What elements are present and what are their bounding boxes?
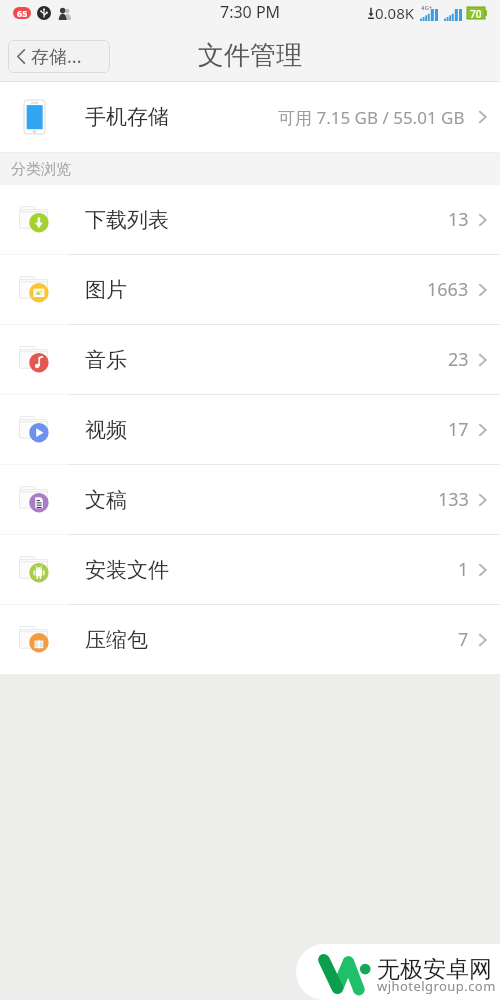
button[interactable]: 文稿 <box>0 465 500 534</box>
staticText: 视频 <box>85 417 127 443</box>
button[interactable]: 图片 <box>0 255 500 324</box>
staticText: 7:30 PM <box>220 1 281 23</box>
button[interactable]: 压缩包 <box>0 605 500 674</box>
staticText: 图片 <box>85 277 127 303</box>
staticText: 4G+ <box>421 4 433 12</box>
staticText: 文件管理 <box>198 39 302 72</box>
staticText: 0.08K <box>375 3 415 23</box>
staticText: 可用 7.15 GB / 55.01 GB <box>278 106 465 129</box>
staticText: wjhotelgroup.com <box>377 977 496 995</box>
staticText: 23 <box>448 347 469 372</box>
button[interactable]: 下载列表 <box>0 185 500 254</box>
staticText: 音乐 <box>85 347 127 373</box>
staticText: 手机存储 <box>85 104 169 130</box>
staticText: 7 <box>458 627 469 652</box>
staticText: 1663 <box>427 277 469 302</box>
staticText: 分类浏览 <box>11 160 71 179</box>
staticText: 13 <box>448 207 469 232</box>
staticText: 无极安卓网 <box>377 955 492 984</box>
staticText: 安装文件 <box>85 557 169 583</box>
staticText: 存储... <box>31 44 82 69</box>
button[interactable]: 手机存储 <box>0 82 500 152</box>
staticText: 1 <box>458 557 469 582</box>
button[interactable]: 视频 <box>0 395 500 464</box>
staticText: 文稿 <box>85 487 127 513</box>
staticText: 70 <box>470 7 482 19</box>
staticText: 下载列表 <box>85 207 169 233</box>
staticText: 17 <box>448 417 469 442</box>
button[interactable]: 存储... <box>8 40 110 73</box>
staticText: 压缩包 <box>85 627 148 653</box>
staticText: 133 <box>438 487 469 512</box>
staticText: 65 <box>17 7 28 19</box>
button[interactable]: 安装文件 <box>0 535 500 604</box>
button[interactable]: 音乐 <box>0 325 500 394</box>
